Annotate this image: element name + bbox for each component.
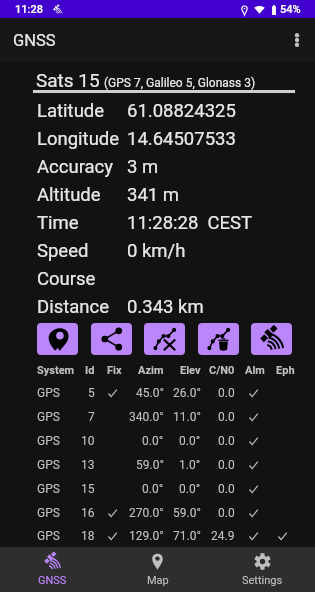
staticText: 0.0°: [142, 482, 164, 496]
staticText: 59.0°: [173, 506, 201, 520]
staticText: GPS: [37, 458, 60, 472]
staticText: 11:28: [15, 3, 43, 16]
staticText: GPS: [37, 482, 60, 496]
staticText: 0.0°: [179, 482, 201, 496]
staticText: 341 m: [127, 184, 180, 206]
staticText: 7: [88, 410, 95, 424]
staticText: 0.0: [218, 386, 235, 400]
staticText: 24.9: [211, 529, 235, 543]
button[interactable]: Delete track: [198, 323, 239, 355]
button[interactable]: Location: [37, 323, 78, 355]
staticText: Id: [85, 364, 95, 377]
staticText: 0.343 km: [127, 296, 204, 318]
staticText: 13: [81, 458, 95, 472]
staticText: C/N0: [209, 364, 235, 377]
staticText: 59.0°: [136, 458, 164, 472]
staticText: 0.0: [218, 458, 235, 472]
staticText: 71.0°: [173, 529, 201, 543]
staticText: 10: [81, 434, 95, 448]
button[interactable]: Settings: [210, 547, 315, 592]
staticText: Altitude: [37, 184, 101, 206]
staticText: 0.0°: [179, 434, 201, 448]
staticText: System: [37, 364, 75, 377]
staticText: 14.64507533: [127, 128, 236, 150]
staticText: 0.0: [218, 434, 235, 448]
staticText: 26.0°: [173, 386, 201, 400]
staticText: Longitude: [37, 128, 120, 150]
staticText: Eph: [276, 364, 295, 377]
staticText: Latitude: [37, 100, 105, 122]
staticText: Settings: [242, 574, 283, 587]
staticText: GPS: [37, 529, 60, 543]
staticText: GPS: [37, 506, 60, 520]
staticText: GPS: [37, 410, 60, 424]
staticText: Time: [37, 212, 79, 234]
button[interactable]: More options: [279, 22, 315, 58]
staticText: (GPS 7, Galileo 5, Glonass 3): [104, 76, 256, 90]
staticText: 340.0°: [129, 410, 164, 424]
button[interactable]: Map: [105, 547, 210, 592]
staticText: 15: [81, 482, 95, 496]
staticText: GPS: [37, 434, 60, 448]
staticText: 270.0°: [129, 506, 164, 520]
staticText: 5: [88, 386, 95, 400]
staticText: 11:28:28 CEST: [127, 212, 253, 234]
staticText: 0.0: [218, 482, 235, 496]
staticText: Sats 15: [36, 69, 100, 91]
staticText: Map: [147, 574, 169, 587]
staticText: 16: [81, 506, 95, 520]
staticText: 61.08824325: [127, 100, 236, 122]
staticText: Distance: [37, 296, 110, 318]
staticText: 54%: [280, 3, 301, 16]
button[interactable]: Satellites: [251, 323, 292, 355]
staticText: Azim: [138, 364, 164, 377]
staticText: GNSS: [13, 31, 56, 50]
staticText: Course: [37, 268, 96, 290]
staticText: 0.0: [218, 410, 235, 424]
staticText: 0 km/h: [127, 240, 186, 262]
staticText: 129.0°: [129, 529, 164, 543]
staticText: 1.0°: [179, 458, 201, 472]
button[interactable]: GNSS: [0, 547, 105, 592]
staticText: 18: [81, 529, 95, 543]
staticText: 3 m: [127, 156, 159, 178]
staticText: 0.0: [218, 506, 235, 520]
staticText: GNSS: [38, 574, 67, 587]
button[interactable]: Clear track: [144, 323, 185, 355]
staticText: Alm: [245, 364, 265, 377]
staticText: GPS: [37, 386, 60, 400]
staticText: 0.0°: [142, 434, 164, 448]
staticText: Speed: [37, 240, 89, 262]
button[interactable]: Share: [91, 323, 132, 355]
staticText: Elev: [180, 364, 201, 377]
staticText: Fix: [107, 364, 122, 377]
staticText: 11.0°: [173, 410, 201, 424]
staticText: 45.0°: [136, 386, 164, 400]
staticText: Accuracy: [37, 156, 114, 178]
